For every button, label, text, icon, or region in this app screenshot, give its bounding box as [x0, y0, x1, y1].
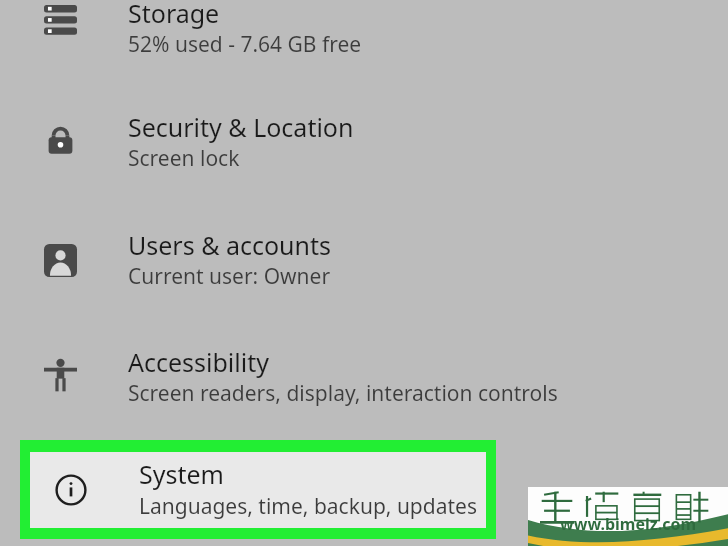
other: Security and Location — [44, 124, 77, 157]
staticText: Accessibility — [128, 345, 269, 379]
other: Users and accounts — [44, 244, 77, 277]
button[interactable] — [0, 337, 728, 437]
staticText: System — [139, 457, 224, 491]
staticText: Security & Location — [128, 110, 354, 144]
staticText: Screen readers, display, interaction con… — [128, 379, 558, 408]
staticText: Storage — [128, 0, 220, 30]
staticText: Users & accounts — [128, 228, 332, 262]
button[interactable]: System — [20, 440, 496, 539]
staticText: www.bimeiz.com — [560, 513, 697, 535]
staticText: Current user: Owner — [128, 262, 331, 291]
staticText: Languages, time, backup, updates — [139, 492, 477, 521]
staticText: Screen lock — [128, 144, 240, 173]
staticText: 52% used - 7.64 GB free — [128, 30, 362, 59]
button[interactable] — [0, 220, 728, 320]
button[interactable] — [0, 0, 728, 88]
other: Accessibility — [44, 359, 77, 392]
other: System — [55, 474, 87, 506]
other: Storage — [44, 3, 77, 36]
button[interactable] — [0, 102, 728, 202]
